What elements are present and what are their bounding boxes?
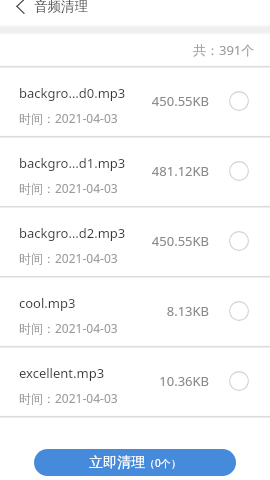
staticText: backgro…d0.mp3 bbox=[19, 84, 126, 102]
staticText: 时间：2021-04-03 bbox=[19, 250, 118, 266]
staticText: 音频清理 bbox=[34, 0, 88, 15]
button[interactable]: backgro…d1.mp3 bbox=[0, 136, 270, 206]
button[interactable]: Back bbox=[5, 0, 31, 20]
staticText: 时间：2021-04-03 bbox=[19, 180, 118, 196]
button[interactable]: 立即清理（0个） bbox=[34, 449, 236, 476]
button[interactable]: backgro…d0.mp3 bbox=[0, 66, 270, 136]
staticText: 481.12KB bbox=[139, 162, 209, 180]
staticText: 8.13KB bbox=[139, 302, 209, 320]
button[interactable]: cool.mp3 bbox=[0, 276, 270, 346]
staticText: cool.mp3 bbox=[19, 294, 76, 312]
staticText: 时间：2021-04-03 bbox=[19, 390, 118, 406]
staticText: 10.36KB bbox=[139, 372, 209, 390]
staticText: 时间：2021-04-03 bbox=[19, 110, 118, 126]
staticText: 立即清理（0个） bbox=[89, 454, 181, 472]
staticText: 450.55KB bbox=[139, 232, 209, 250]
staticText: 450.55KB bbox=[139, 92, 209, 110]
button[interactable]: backgro…d2.mp3 bbox=[0, 206, 270, 276]
staticText: backgro…d2.mp3 bbox=[19, 224, 126, 242]
button[interactable]: excellent.mp3 bbox=[0, 346, 270, 416]
staticText: 共：391个 bbox=[193, 41, 255, 59]
staticText: 时间：2021-04-03 bbox=[19, 320, 118, 336]
staticText: backgro…d1.mp3 bbox=[19, 154, 126, 172]
staticText: excellent.mp3 bbox=[19, 364, 105, 382]
